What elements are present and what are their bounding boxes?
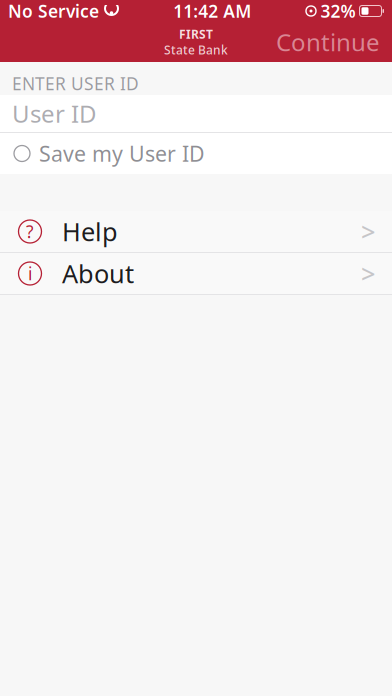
staticText: ? [26,220,34,243]
staticText: > [361,257,375,290]
staticText: > [361,215,375,248]
staticText: ENTER USER ID [12,72,139,95]
staticText: 11:42 AM [173,0,251,22]
staticText: Continue [276,26,380,58]
staticText: Save my User ID [39,139,205,168]
staticText: i [28,262,32,285]
staticText: No Service [8,0,99,22]
staticText: State Bank [164,42,228,58]
staticText: About [62,257,134,290]
button[interactable]: Save my User ID [0,133,392,174]
staticText: User ID [12,98,97,129]
button[interactable]: User ID [0,95,392,132]
staticText: 32% [320,0,355,22]
button[interactable]: ? [0,211,392,252]
button[interactable]: Continue [264,22,392,62]
staticText: FIRST [179,26,213,42]
staticText: Help [62,215,118,248]
button[interactable]: i [0,253,392,294]
